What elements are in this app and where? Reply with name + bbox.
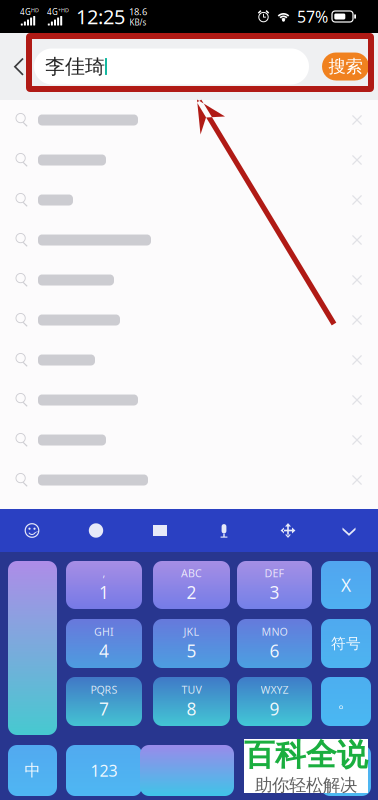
staticText: 符号 bbox=[331, 634, 361, 653]
button[interactable]: 0 bbox=[321, 745, 371, 796]
button[interactable]: 搜索 bbox=[322, 52, 369, 80]
staticText: HD bbox=[31, 7, 39, 14]
button[interactable]: 。 bbox=[321, 677, 371, 726]
staticText: 3 bbox=[269, 580, 279, 604]
button[interactable]: ABC bbox=[153, 561, 230, 609]
staticText: DEF bbox=[264, 566, 284, 580]
button[interactable] bbox=[0, 300, 378, 340]
staticText: 12:25 bbox=[76, 3, 125, 30]
button[interactable] bbox=[0, 220, 378, 260]
button[interactable]: Clipboard bbox=[128, 509, 192, 552]
staticText: 57% bbox=[297, 6, 328, 27]
button[interactable]: Back bbox=[0, 35, 34, 97]
button[interactable] bbox=[0, 180, 378, 220]
staticText: 6 bbox=[269, 639, 279, 663]
button[interactable]: Hide keyboard bbox=[320, 509, 378, 552]
button[interactable]: WXYZ bbox=[237, 677, 312, 726]
staticText: 4G bbox=[20, 7, 31, 17]
staticText: JKL bbox=[183, 624, 199, 639]
button[interactable]: MNO bbox=[237, 619, 312, 668]
staticText: 8 bbox=[186, 697, 196, 721]
staticText: 0 bbox=[341, 759, 351, 782]
button[interactable]: TUV bbox=[153, 677, 230, 726]
staticText: X bbox=[341, 573, 351, 597]
staticText: 中 bbox=[24, 760, 40, 781]
staticText: 李佳琦 bbox=[45, 54, 105, 79]
button[interactable]: Move keyboard bbox=[256, 509, 320, 552]
staticText: +HD bbox=[58, 7, 69, 14]
button[interactable] bbox=[0, 260, 378, 300]
button[interactable] bbox=[0, 140, 378, 180]
staticText: , bbox=[102, 566, 105, 580]
button[interactable]: DEF bbox=[237, 561, 312, 609]
button[interactable]: 123 bbox=[66, 745, 142, 796]
button[interactable] bbox=[0, 420, 378, 460]
button[interactable] bbox=[8, 561, 57, 735]
staticText: 18.6 bbox=[129, 5, 147, 18]
staticText: 2 bbox=[186, 580, 196, 604]
staticText: 4G bbox=[47, 7, 58, 17]
button[interactable]: Emoji bbox=[0, 509, 64, 552]
staticText: 。 bbox=[337, 691, 354, 712]
button[interactable]: PQRS bbox=[66, 677, 142, 726]
staticText: PQRS bbox=[90, 682, 117, 697]
staticText: ABC bbox=[181, 566, 202, 580]
staticText: 4 bbox=[99, 639, 109, 663]
staticText: 助你轻松解决 bbox=[255, 774, 357, 796]
button[interactable]: 中 bbox=[8, 745, 57, 796]
staticText: MNO bbox=[261, 624, 287, 639]
button[interactable]: 符号 bbox=[321, 619, 371, 668]
button[interactable] bbox=[0, 340, 378, 380]
button[interactable]: GHI bbox=[66, 619, 142, 668]
staticText: 9 bbox=[269, 697, 279, 721]
button[interactable] bbox=[140, 745, 234, 796]
staticText: 123 bbox=[90, 760, 117, 781]
staticText: 百科全说 bbox=[244, 736, 368, 774]
staticText: 7 bbox=[99, 697, 109, 721]
staticText: 搜索 bbox=[328, 56, 362, 77]
button[interactable] bbox=[0, 380, 378, 420]
staticText: 1 bbox=[99, 580, 109, 604]
button[interactable]: X bbox=[321, 561, 371, 609]
staticText: TUV bbox=[181, 682, 201, 697]
button[interactable]: Theme bbox=[64, 509, 128, 552]
staticText: 5 bbox=[186, 639, 196, 663]
staticText: KB/s bbox=[129, 17, 146, 28]
button[interactable] bbox=[0, 460, 378, 500]
button[interactable] bbox=[0, 100, 378, 140]
staticText: GHI bbox=[94, 624, 114, 639]
button[interactable]: , bbox=[66, 561, 142, 609]
staticText: WXYZ bbox=[260, 682, 288, 697]
button[interactable]: JKL bbox=[153, 619, 230, 668]
button[interactable]: Voice input bbox=[192, 509, 256, 552]
